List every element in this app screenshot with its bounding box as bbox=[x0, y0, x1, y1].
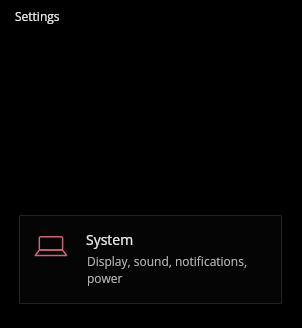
staticText: Settings bbox=[15, 8, 60, 24]
other: System settings bbox=[34, 236, 69, 259]
button[interactable]: System settings bbox=[19, 215, 282, 304]
staticText: Display, sound, notifications, power bbox=[87, 253, 248, 287]
staticText: System bbox=[86, 230, 134, 249]
